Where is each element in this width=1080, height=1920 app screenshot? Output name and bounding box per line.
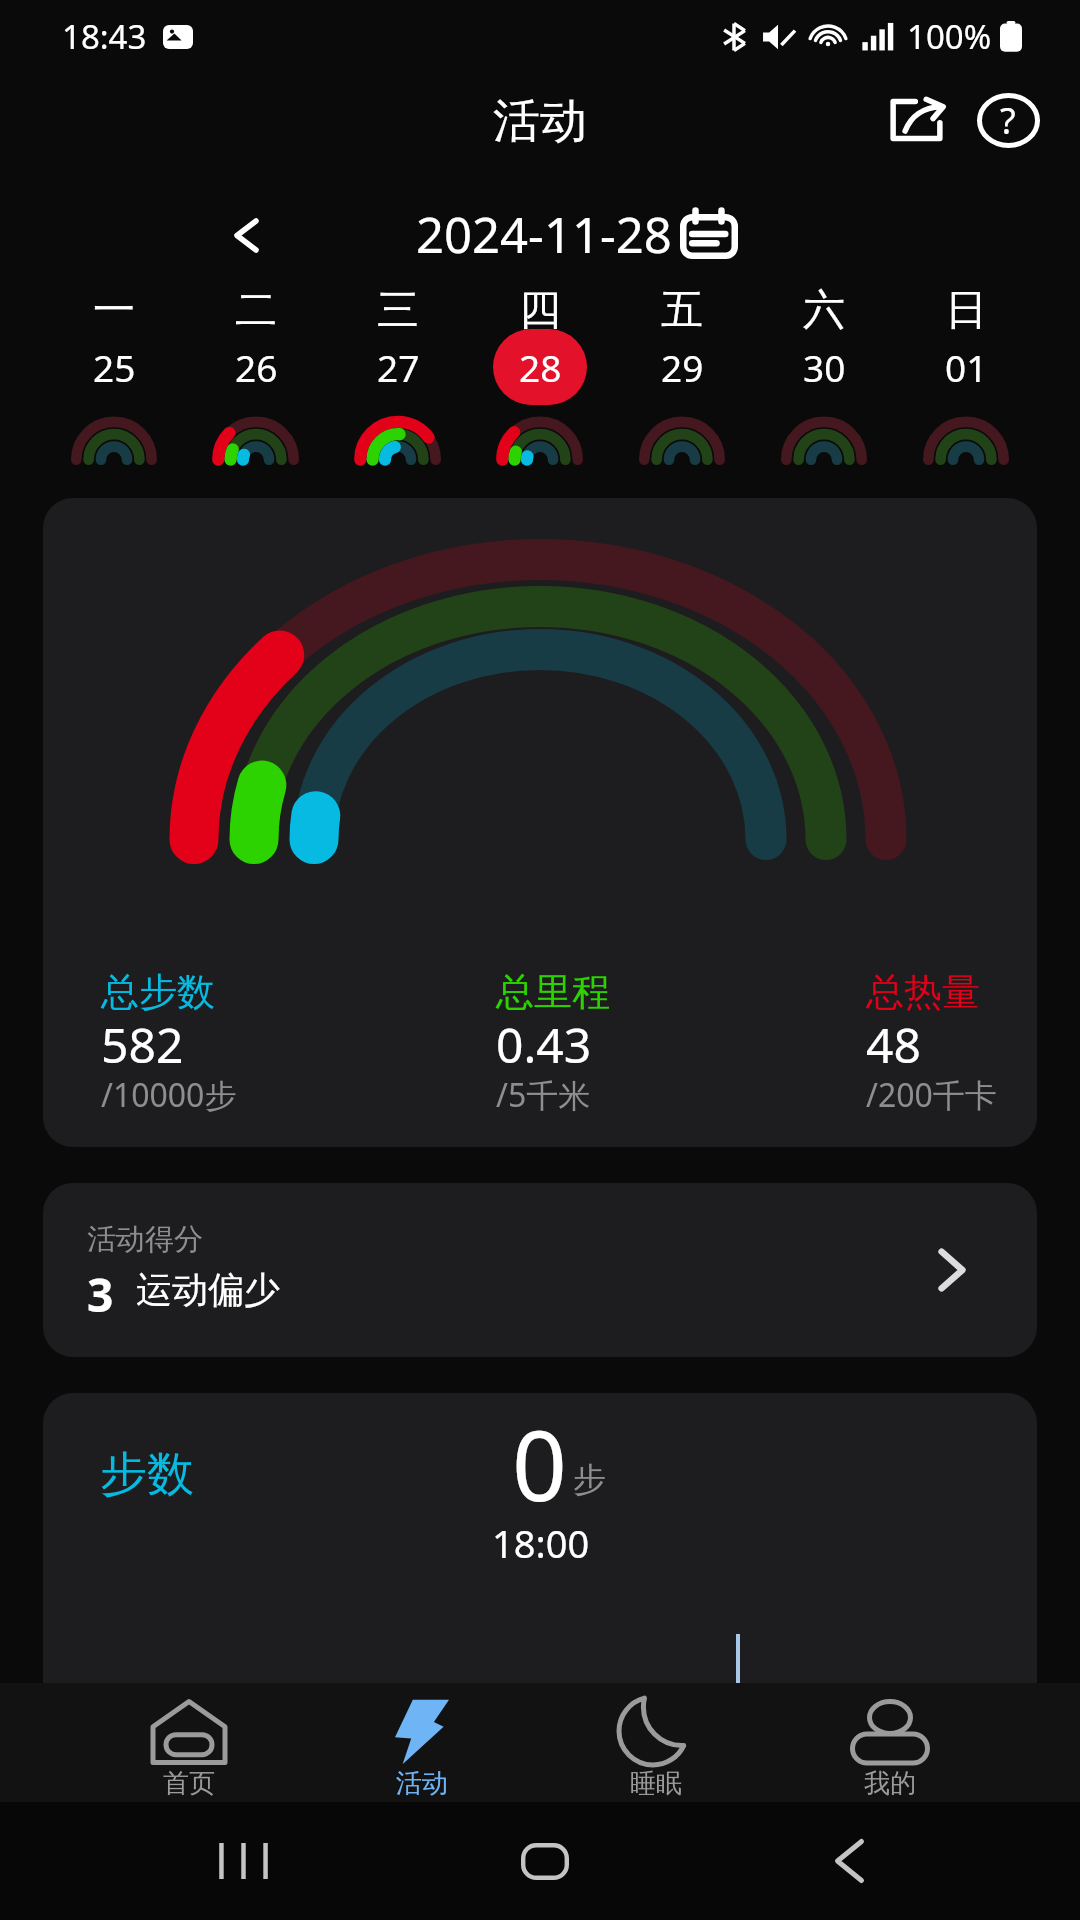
button[interactable]: 活动	[305, 1683, 539, 1802]
staticText: 100%	[907, 14, 992, 59]
staticText: 三	[377, 284, 419, 337]
staticText: 48	[866, 1012, 921, 1077]
staticText: 26	[235, 342, 278, 392]
button[interactable]: 步数	[43, 1393, 1037, 1683]
staticText: 0.43	[496, 1012, 592, 1077]
button[interactable]: Recent apps	[188, 1806, 298, 1916]
staticText: 28	[519, 342, 562, 392]
button[interactable]: 六	[753, 282, 895, 482]
button[interactable]: 三	[327, 282, 469, 482]
button[interactable]: Share	[876, 80, 956, 160]
button[interactable]: 睡眠	[539, 1683, 773, 1802]
button[interactable]: 二	[185, 282, 327, 482]
staticText: 运动偏少	[136, 1267, 280, 1312]
staticText: 2024-11-28	[416, 201, 672, 268]
button[interactable]: 五	[611, 282, 753, 482]
staticText: 五	[661, 284, 703, 337]
staticText: 一	[93, 284, 135, 337]
staticText: 29	[661, 342, 704, 392]
staticText: 活动得分	[87, 1221, 203, 1258]
staticText: /10000步	[101, 1073, 237, 1117]
button[interactable]: Back	[794, 1806, 904, 1916]
staticText: 18:00	[492, 1517, 590, 1569]
staticText: 582	[101, 1012, 184, 1077]
staticText: 01	[945, 342, 988, 392]
staticText: 我的	[864, 1767, 916, 1800]
button[interactable]: 活动得分	[43, 1183, 1037, 1357]
staticText: 六	[803, 284, 845, 337]
staticText: 步	[573, 1459, 606, 1501]
staticText: 总步数	[101, 968, 215, 1016]
staticText: 步数	[100, 1445, 194, 1504]
staticText: ?	[1000, 96, 1016, 145]
staticText: /200千卡	[866, 1073, 997, 1117]
staticText: 30	[803, 342, 846, 392]
staticText: 0	[512, 1398, 567, 1529]
staticText: 睡眠	[630, 1767, 682, 1800]
button[interactable]: 四	[469, 282, 611, 482]
button[interactable]: Help	[968, 80, 1048, 160]
staticText: 四	[519, 284, 561, 337]
button[interactable]: 首页	[72, 1683, 305, 1802]
staticText: 27	[377, 342, 420, 392]
staticText: 二	[235, 284, 277, 337]
staticText: 3	[87, 1263, 114, 1326]
button[interactable]: 总步数	[43, 498, 1037, 1147]
staticText: 日	[945, 284, 987, 337]
button[interactable]: 我的	[773, 1683, 1007, 1802]
staticText: 总里程	[496, 968, 610, 1016]
button[interactable]: 一	[43, 282, 185, 482]
staticText: 首页	[163, 1767, 215, 1800]
button[interactable]: Home	[490, 1806, 600, 1916]
staticText: 18:43	[62, 14, 147, 59]
button[interactable]: Pick date	[671, 199, 747, 269]
staticText: 25	[93, 342, 136, 392]
staticText: 总热量	[866, 968, 980, 1016]
button[interactable]: Previous day	[208, 197, 284, 273]
staticText: 活动	[396, 1767, 448, 1800]
staticText: 活动	[493, 92, 587, 151]
staticText: /5千米	[496, 1073, 591, 1117]
button[interactable]: 日	[895, 282, 1037, 482]
